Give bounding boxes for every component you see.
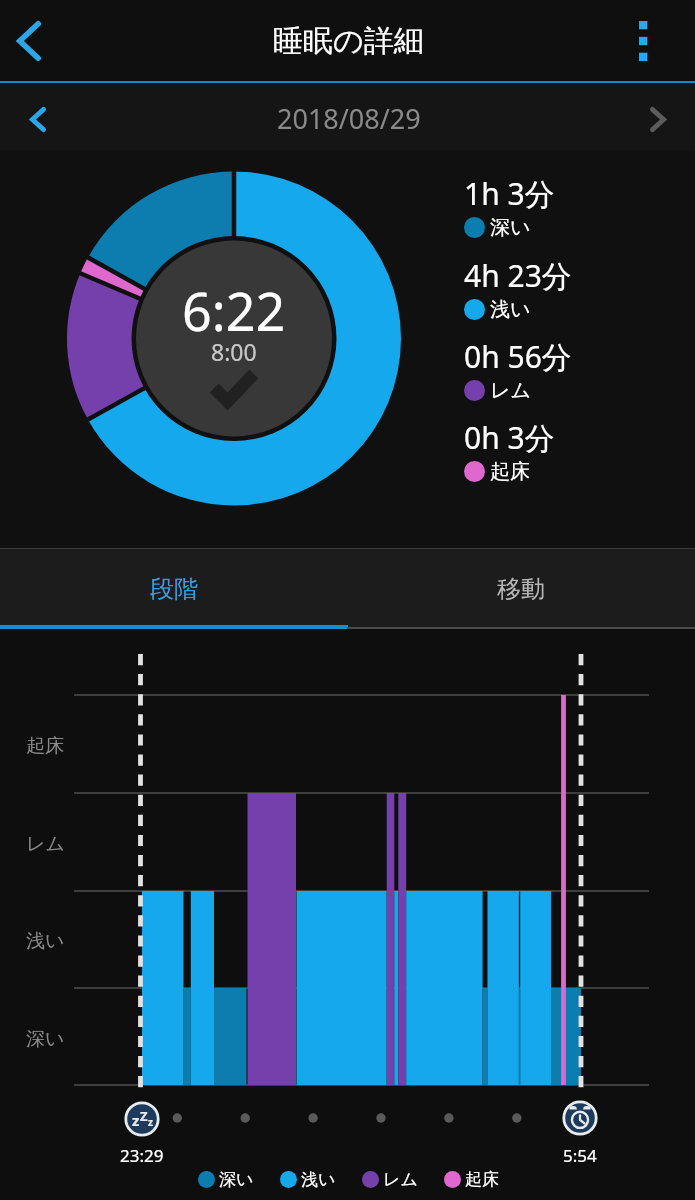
staticText: 5:54 <box>563 1144 597 1167</box>
button[interactable]: Previous day <box>8 86 68 153</box>
staticText: 移動 <box>497 574 545 604</box>
button[interactable]: Back <box>0 0 58 81</box>
staticText: 0h 3分 <box>464 417 555 458</box>
staticText: 起床 <box>26 734 64 758</box>
button[interactable]: 0h 56分 <box>464 336 572 403</box>
staticText: z <box>132 1110 140 1130</box>
button[interactable]: 1h 3分 <box>464 173 555 240</box>
button[interactable]: More options <box>614 0 672 81</box>
staticText: レム <box>490 378 531 403</box>
staticText: 0h 56分 <box>464 336 572 377</box>
staticText: 1h 3分 <box>464 173 555 214</box>
staticText: 4h 23分 <box>464 255 572 296</box>
staticText: レム <box>383 1169 418 1190</box>
staticText: 浅い <box>490 297 531 322</box>
staticText: 起床 <box>490 459 530 484</box>
staticText: 浅い <box>26 929 65 953</box>
staticText: 深い <box>26 1027 65 1051</box>
staticText: z <box>148 1115 153 1129</box>
staticText: 段階 <box>150 574 198 604</box>
staticText: 8:00 <box>211 336 257 367</box>
button[interactable]: 4h 23分 <box>464 255 572 322</box>
button[interactable]: 段階 <box>0 549 347 629</box>
staticText: 6:22 <box>182 275 286 346</box>
staticText: 23:29 <box>120 1144 164 1167</box>
staticText: 深い <box>490 215 531 240</box>
button[interactable]: Wake alarm time <box>560 1098 600 1138</box>
button[interactable]: Sleep start time <box>122 1099 162 1139</box>
staticText: 睡眠の詳細 <box>273 22 424 60</box>
staticText: Z <box>140 1107 148 1125</box>
staticText: 2018/08/29 <box>277 100 421 130</box>
button[interactable]: 0h 3分 <box>464 417 555 484</box>
staticText: 起床 <box>465 1169 499 1190</box>
button[interactable]: 移動 <box>347 549 695 629</box>
button[interactable]: Next day <box>628 86 688 153</box>
staticText: 深い <box>219 1169 254 1190</box>
staticText: 浅い <box>301 1169 336 1190</box>
staticText: レム <box>26 832 65 856</box>
